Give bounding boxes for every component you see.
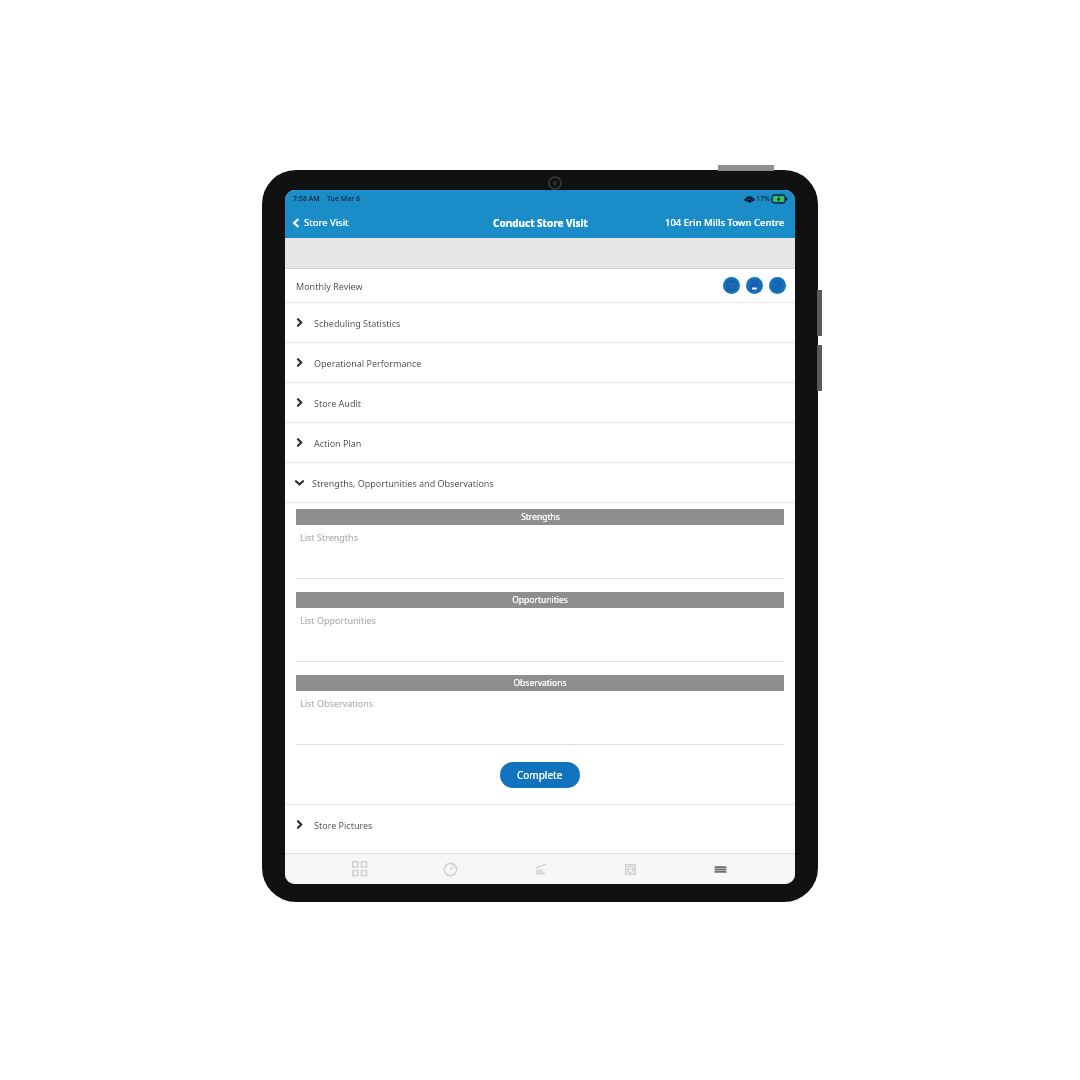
staticText: Store Visit [304,216,349,229]
button[interactable]: Store Audit [285,383,795,422]
button[interactable]: Cancel [769,277,786,294]
staticText: Strengths, Opportunities and Observation… [312,477,494,489]
staticText: 104 Erin Mills Town Centre [665,216,785,229]
button[interactable]: Dashboard [345,854,375,884]
staticText: Complete [517,768,563,782]
staticText: List Opportunities [300,614,376,626]
staticText: 7:58 AM [293,194,320,204]
staticText: List Observations [300,697,374,709]
button[interactable]: Operational Performance [285,343,795,382]
staticText: List Strengths [300,531,358,543]
staticText: Conduct Store Visit [493,216,588,230]
button[interactable]: Strengths, Opportunities and Observation… [285,463,795,502]
staticText: Strengths [521,511,560,523]
staticText: Action Plan [314,437,362,449]
button[interactable]: Complete [500,762,580,788]
button[interactable]: List Strengths [296,525,784,579]
button[interactable]: Store Visit [285,207,355,238]
button[interactable]: Save [723,277,740,294]
staticText: Monthly Review [296,280,363,292]
button[interactable]: Action Plan [285,423,795,462]
staticText: 17% [756,194,770,204]
staticText: Operational Performance [314,357,422,369]
button[interactable]: Print [746,277,763,294]
staticText: Scheduling Statistics [314,317,401,329]
button[interactable]: Store Pictures [285,805,795,844]
button[interactable]: Performance [435,854,465,884]
staticText: Store Audit [314,397,362,409]
button[interactable]: List Observations [296,691,784,745]
button[interactable]: Menu [705,854,735,884]
button[interactable]: List Opportunities [296,608,784,662]
button[interactable]: Reports [525,854,555,884]
staticText: Tue Mar 8 [327,194,361,204]
button[interactable]: Scheduling Statistics [285,303,795,342]
staticText: Store Pictures [314,819,373,831]
button[interactable]: Territory [615,854,645,884]
staticText: Opportunities [512,594,568,606]
staticText: Observations [513,677,567,689]
